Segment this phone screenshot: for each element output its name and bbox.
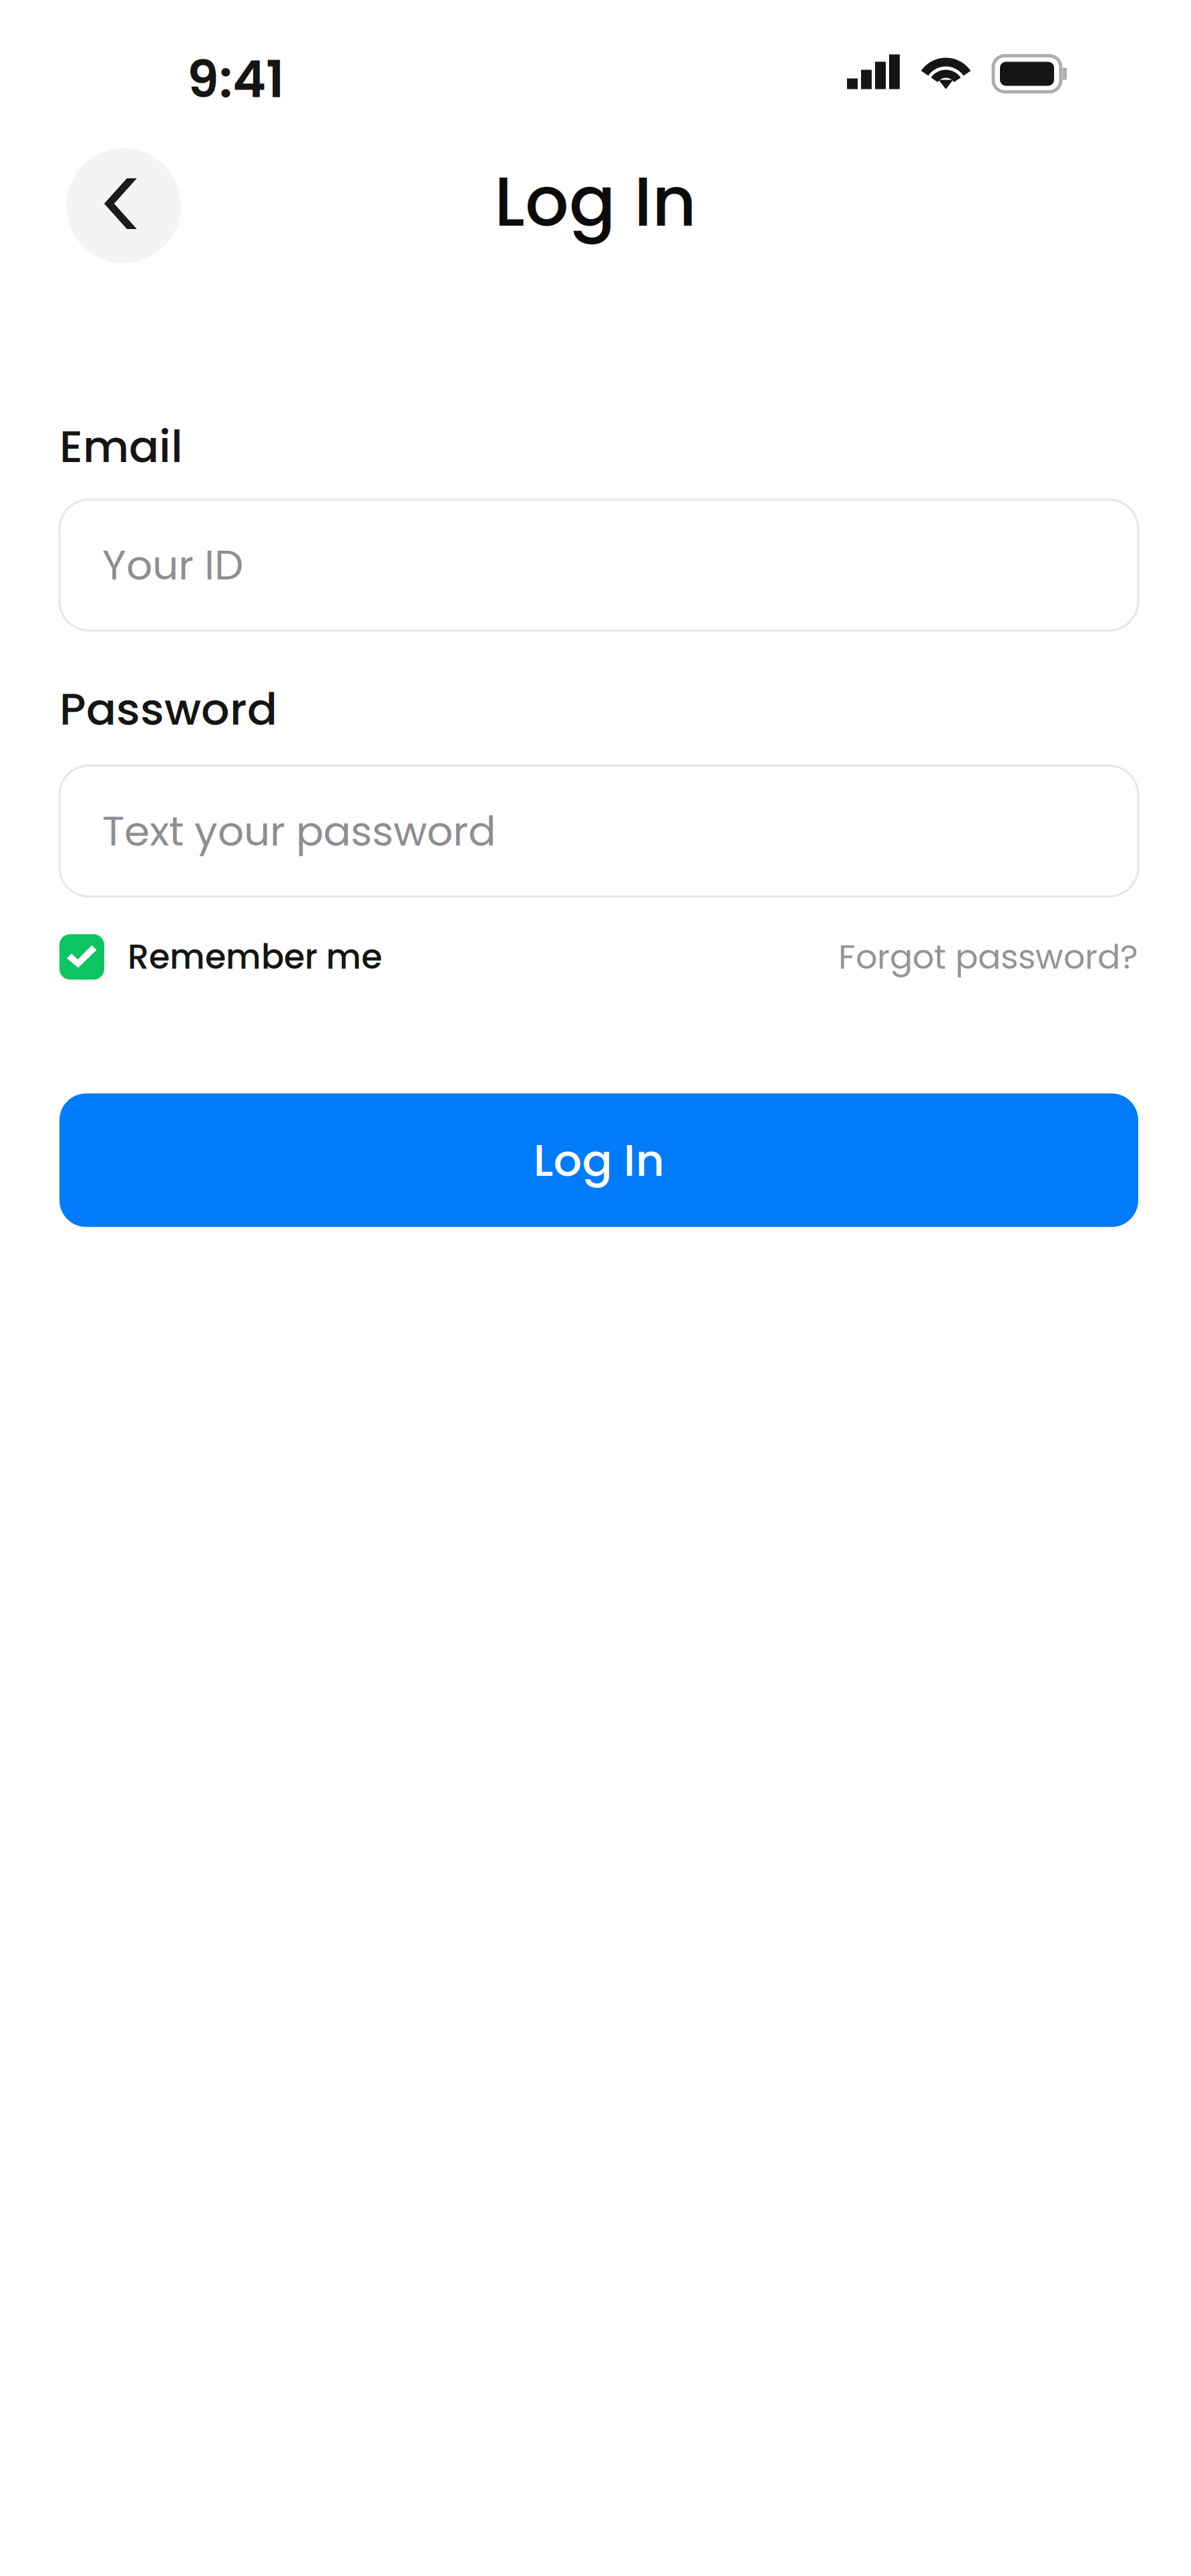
staticText: Email (59, 415, 183, 478)
staticText: Your ID (102, 536, 243, 594)
staticText: Log In (494, 154, 697, 250)
button[interactable]: Text your password (59, 766, 1138, 897)
staticText: Password (59, 678, 277, 740)
staticText: Forgot password? (838, 933, 1138, 981)
button[interactable]: Forgot password? (838, 933, 1138, 981)
button[interactable]: Back (66, 148, 181, 263)
button[interactable]: Your ID (59, 500, 1138, 631)
staticText: Text your password (102, 802, 496, 860)
staticText: Remember me (128, 933, 382, 981)
staticText: Log In (533, 1129, 664, 1191)
staticText: 9:41 (187, 44, 285, 115)
button[interactable]: Log In (59, 1093, 1138, 1227)
button[interactable]: Remember me (59, 933, 382, 981)
